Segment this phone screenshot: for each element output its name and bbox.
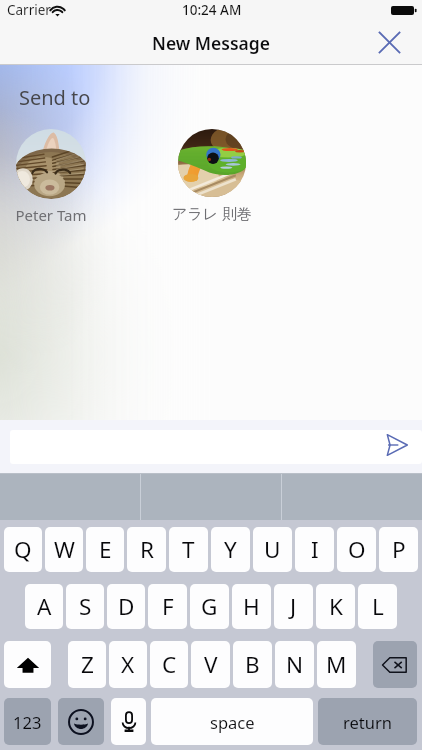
button[interactable]: U — [253, 527, 292, 572]
button[interactable]: I — [295, 527, 334, 572]
button[interactable]: N — [275, 641, 314, 688]
button[interactable]: R — [127, 527, 166, 572]
button[interactable]: E — [86, 527, 124, 572]
staticText: I — [311, 534, 319, 565]
staticText: アラレ 則巻 — [158, 203, 266, 223]
button[interactable]: G — [190, 584, 229, 629]
staticText: J — [290, 591, 297, 622]
staticText: B — [245, 649, 260, 680]
button[interactable]: P — [379, 527, 418, 572]
staticText: 123 — [13, 711, 42, 733]
button[interactable]: Send — [378, 427, 414, 463]
button[interactable]: S — [66, 584, 104, 629]
staticText: Peter Tam — [0, 205, 105, 225]
button[interactable]: Y — [211, 527, 250, 572]
staticText: Send to — [19, 84, 91, 111]
button[interactable]: W — [45, 527, 83, 572]
button[interactable]: アラレ 則巻 — [158, 129, 266, 223]
staticText: R — [140, 534, 154, 565]
staticText: N — [286, 649, 304, 680]
staticText: Y — [224, 534, 237, 565]
staticText: T — [182, 534, 195, 565]
staticText: K — [329, 591, 343, 622]
staticText: H — [243, 591, 260, 622]
button[interactable]: M — [317, 641, 356, 688]
button[interactable]: O — [337, 527, 376, 572]
button[interactable]: V — [191, 641, 230, 688]
staticText: V — [204, 649, 218, 680]
button[interactable]: T — [169, 527, 208, 572]
button[interactable]: Peter Tam — [0, 129, 105, 225]
button[interactable]: L — [358, 584, 397, 629]
button[interactable]: Close — [368, 20, 422, 65]
staticText: S — [79, 591, 92, 622]
staticText: X — [121, 649, 135, 680]
staticText: U — [264, 534, 281, 565]
button[interactable]: Dictation — [111, 698, 146, 745]
button[interactable]: Backspace — [373, 641, 417, 688]
staticText: Q — [14, 534, 32, 565]
button[interactable]: C — [150, 641, 188, 688]
button[interactable]: Shift — [4, 641, 51, 688]
button[interactable]: A — [25, 584, 63, 629]
staticText: Z — [81, 649, 94, 680]
staticText: New Message — [152, 31, 271, 55]
staticText: W — [54, 534, 75, 565]
button[interactable]: Emoji — [58, 698, 104, 745]
button[interactable] — [10, 430, 422, 464]
staticText: L — [372, 591, 384, 622]
button[interactable]: Z — [68, 641, 106, 688]
button[interactable]: K — [316, 584, 355, 629]
staticText: Carrier — [7, 1, 51, 19]
staticText: D — [118, 591, 135, 622]
staticText: E — [99, 534, 112, 565]
staticText: C — [162, 649, 177, 680]
button[interactable]: Q — [4, 527, 42, 572]
button[interactable]: space — [151, 698, 313, 745]
staticText: G — [201, 591, 218, 622]
staticText: O — [348, 534, 366, 565]
button[interactable]: J — [274, 584, 313, 629]
staticText: 10:24 AM — [182, 1, 242, 19]
staticText: return — [343, 711, 392, 733]
button[interactable]: 123 — [4, 698, 51, 745]
button[interactable]: B — [233, 641, 272, 688]
button[interactable]: H — [232, 584, 271, 629]
button[interactable]: X — [109, 641, 147, 688]
staticText: M — [326, 649, 347, 680]
staticText: F — [162, 591, 174, 622]
button[interactable]: return — [318, 698, 417, 745]
staticText: A — [37, 591, 52, 622]
staticText: P — [392, 534, 406, 565]
staticText: space — [210, 711, 255, 733]
button[interactable]: D — [107, 584, 145, 629]
button[interactable]: F — [148, 584, 187, 629]
